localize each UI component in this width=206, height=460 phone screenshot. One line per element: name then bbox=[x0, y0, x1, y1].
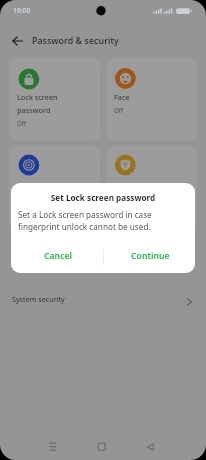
staticText: Lock screen password bbox=[17, 92, 58, 115]
staticText: Continue bbox=[131, 250, 170, 262]
staticText: Face bbox=[114, 92, 130, 102]
staticText: Set a Lock screen password in case finge… bbox=[18, 209, 152, 232]
staticText: System security bbox=[12, 294, 65, 304]
button[interactable] bbox=[106, 58, 197, 141]
button[interactable] bbox=[68, 428, 137, 460]
button[interactable]: System security bbox=[0, 283, 206, 317]
button[interactable] bbox=[106, 146, 197, 229]
staticText: 10:00 bbox=[13, 6, 31, 15]
staticText: Cancel bbox=[44, 250, 73, 262]
button[interactable] bbox=[6, 32, 30, 50]
button[interactable] bbox=[0, 428, 68, 460]
staticText: Set Lock screen password bbox=[11, 192, 195, 203]
button[interactable] bbox=[9, 146, 100, 229]
button[interactable] bbox=[9, 58, 100, 141]
button[interactable]: Continue bbox=[104, 243, 195, 268]
staticText: Password & security bbox=[32, 35, 119, 47]
staticText: Off bbox=[17, 119, 27, 127]
staticText: Off bbox=[114, 106, 124, 114]
button[interactable]: Cancel bbox=[12, 243, 104, 268]
button[interactable] bbox=[137, 428, 206, 460]
